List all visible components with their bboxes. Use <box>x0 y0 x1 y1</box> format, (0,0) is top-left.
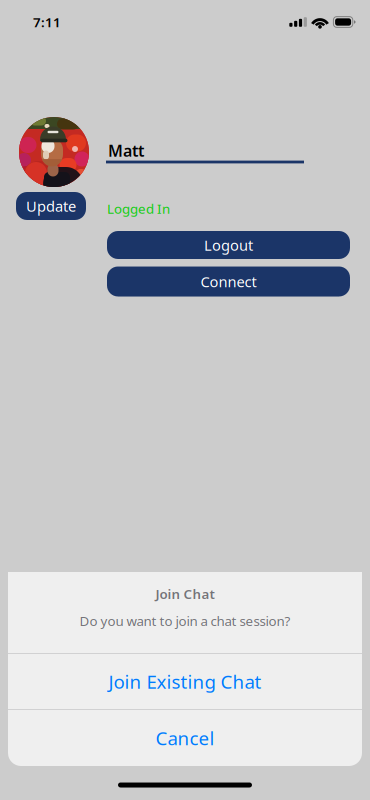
staticText: Join Existing Chat <box>108 669 261 694</box>
staticText: Do you want to join a chat session? <box>79 612 290 630</box>
staticText: Join Chat <box>155 585 214 603</box>
button[interactable]: Cancel <box>8 710 362 766</box>
button[interactable]: Connect <box>107 266 350 296</box>
button[interactable]: Logout <box>107 231 350 259</box>
staticText: Logout <box>204 235 253 255</box>
staticText: 7:11 <box>33 13 61 31</box>
button[interactable]: Update <box>16 192 86 220</box>
staticText: Update <box>26 196 76 216</box>
staticText: Connect <box>200 272 256 291</box>
staticText: Cancel <box>155 726 214 750</box>
button[interactable]: Join Existing Chat <box>8 654 362 709</box>
staticText: Matt <box>108 140 144 161</box>
staticText: Logged In <box>107 200 170 217</box>
